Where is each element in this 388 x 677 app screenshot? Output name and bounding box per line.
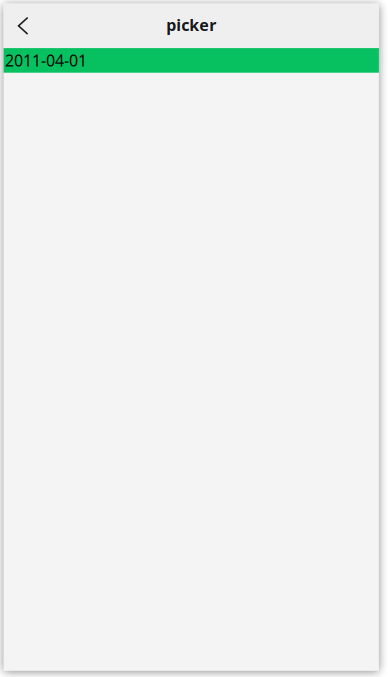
- staticText: picker: [166, 14, 216, 35]
- button[interactable]: 2011-04-01: [4, 48, 379, 73]
- button[interactable]: Back: [4, 5, 43, 46]
- staticText: 2011-04-01: [5, 50, 87, 71]
